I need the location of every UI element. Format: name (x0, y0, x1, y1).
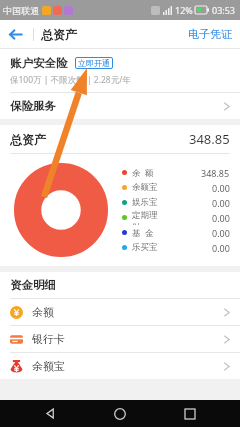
staticText: 基 金 (132, 227, 154, 239)
staticText: 余额宝 (32, 359, 65, 373)
staticText: 立即开通 (78, 58, 110, 68)
staticText: 保100万 | 不限次数 | 2.28元/年 (10, 74, 131, 86)
staticText: 03:53 (212, 4, 236, 16)
staticText: 资金明细 (10, 278, 56, 292)
staticText: 348.85 (189, 130, 230, 148)
staticText: 电子凭证 (188, 27, 232, 41)
button[interactable]: Back (0, 20, 30, 48)
staticText: 银行卡 (32, 332, 65, 346)
staticText: 余额 (32, 305, 54, 319)
button[interactable]: Home (100, 400, 140, 427)
button[interactable]: 账户安全险 (0, 49, 240, 92)
staticText: 账户安全险 (10, 56, 68, 70)
staticText: 0.00 (212, 197, 230, 209)
button[interactable]: Recents (170, 400, 210, 427)
button[interactable]: 银行卡 (0, 326, 240, 352)
staticText: 中国联通 (3, 5, 39, 16)
staticText: 0.00 (212, 242, 230, 254)
staticText: 乐买宝 (132, 242, 158, 253)
button[interactable]: 电子凭证 (180, 23, 240, 45)
staticText: 保险服务 (10, 99, 56, 113)
staticText: 0.00 (212, 182, 230, 194)
button[interactable]: 保险服务 (0, 93, 240, 119)
button[interactable]: 余额 (0, 299, 240, 325)
staticText: 0.00 (212, 212, 230, 224)
staticText: 12% (175, 4, 193, 16)
staticText: 总资产 (10, 132, 46, 147)
staticText: 余额宝 (132, 182, 158, 193)
staticText: 348.85 (201, 167, 230, 179)
staticText: 余 额 (132, 167, 154, 179)
staticText: 0.00 (212, 227, 230, 239)
staticText: 总资产 (41, 27, 77, 42)
staticText: 娱乐宝 (132, 197, 158, 208)
button[interactable]: 余额宝 (0, 353, 240, 379)
staticText: 定期理财 (132, 210, 164, 225)
button[interactable]: Back (30, 400, 70, 427)
